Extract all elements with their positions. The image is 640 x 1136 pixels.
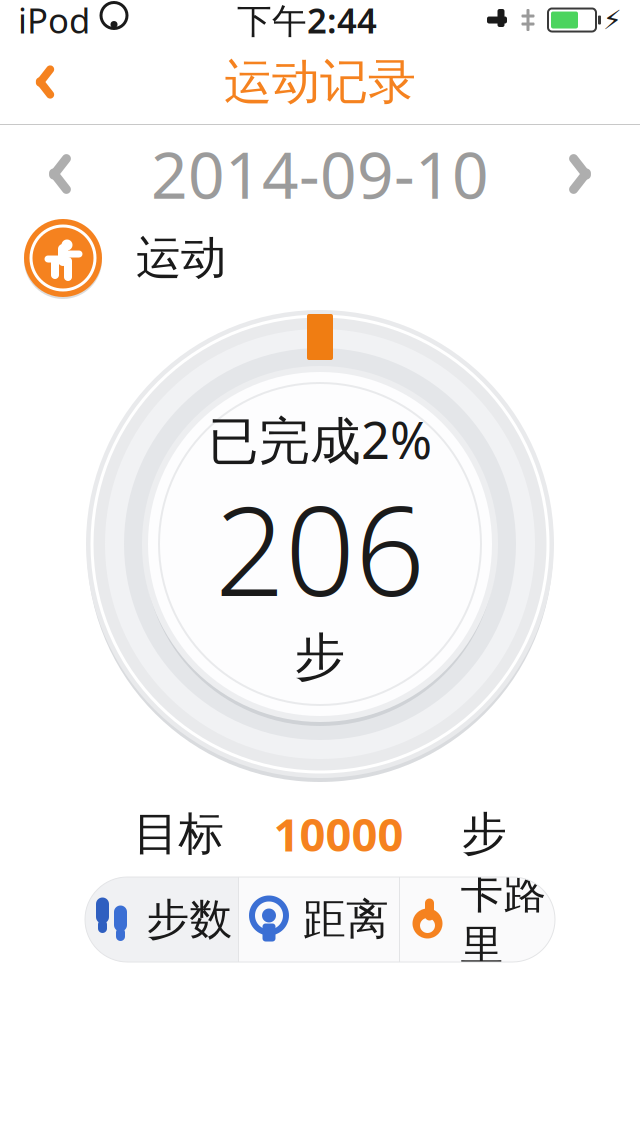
staticText: 步 xyxy=(294,626,345,688)
button[interactable]: Previous day xyxy=(0,133,120,215)
staticText: 步数 xyxy=(146,893,232,946)
staticText: 已完成2% xyxy=(208,406,432,473)
staticText: iPod xyxy=(18,0,90,43)
staticText: 距离 xyxy=(303,893,389,946)
staticText: 目标 xyxy=(133,806,223,862)
staticText: 运动记录 xyxy=(224,52,416,111)
button[interactable]: 距离 xyxy=(239,877,399,962)
staticText: 运动 xyxy=(136,230,226,286)
staticText: 卡路里 xyxy=(460,867,546,972)
staticText: 10000 xyxy=(273,804,403,864)
staticText: 步 xyxy=(461,806,506,862)
button[interactable]: Back xyxy=(0,40,90,124)
staticText: 206 xyxy=(215,467,425,630)
staticText: ⚡︎ xyxy=(603,5,622,35)
staticText: 下午2:44 xyxy=(237,0,377,43)
button[interactable]: 卡路里 xyxy=(400,877,555,962)
button[interactable]: 步数 xyxy=(85,877,238,962)
button[interactable]: Next day xyxy=(520,133,640,215)
staticText: 2014-09-10 xyxy=(151,131,489,216)
